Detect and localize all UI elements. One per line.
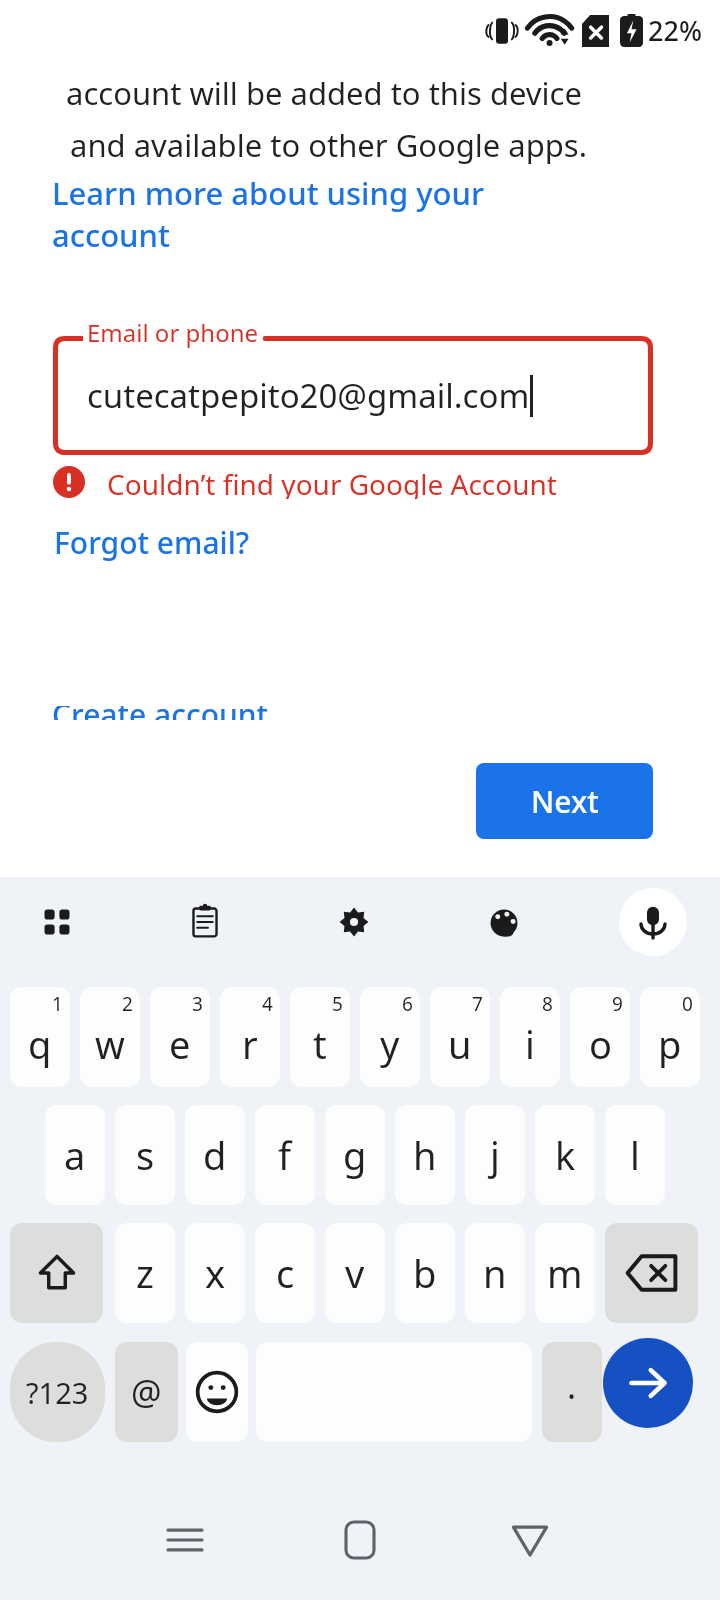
button[interactable]: Backspace	[605, 1223, 698, 1323]
button[interactable]: j	[465, 1105, 525, 1205]
staticText: v	[345, 1247, 365, 1299]
staticText: @	[131, 1369, 162, 1415]
button[interactable]: Create account	[52, 706, 288, 732]
button[interactable]: Enter	[603, 1338, 693, 1428]
staticText: 7	[472, 991, 483, 1017]
staticText: h	[413, 1129, 437, 1181]
button[interactable]: Themes	[470, 888, 538, 956]
staticText: and available to other Google apps.	[70, 124, 588, 166]
button[interactable]: 4	[220, 987, 280, 1087]
staticText: t	[313, 1018, 327, 1070]
button[interactable]: Home	[320, 1500, 400, 1580]
staticText: Email or phone	[87, 316, 259, 349]
staticText: ?123	[26, 1373, 89, 1412]
button[interactable]: Back	[490, 1500, 570, 1580]
button[interactable]: ?123	[10, 1342, 105, 1442]
button[interactable]: v	[325, 1223, 385, 1323]
staticText: Forgot email?	[54, 522, 250, 563]
button[interactable]: Shift	[10, 1223, 103, 1323]
button[interactable]: f	[255, 1105, 315, 1205]
staticText: r	[242, 1018, 258, 1070]
button[interactable]: Forgot email?	[52, 522, 252, 563]
button[interactable]: Voice input	[619, 888, 687, 956]
staticText: 8	[542, 991, 553, 1017]
staticText: 9	[612, 991, 623, 1017]
button[interactable]: Emoji	[186, 1342, 248, 1442]
button[interactable]: s	[115, 1105, 175, 1205]
button[interactable]: z	[115, 1223, 175, 1323]
staticText: z	[136, 1247, 154, 1299]
staticText: 2	[122, 991, 133, 1017]
staticText: l	[630, 1129, 640, 1181]
staticText: f	[278, 1129, 292, 1181]
staticText: g	[343, 1129, 367, 1181]
button[interactable]: b	[395, 1223, 455, 1323]
staticText: i	[525, 1018, 535, 1070]
button[interactable]: m	[535, 1223, 595, 1323]
staticText: u	[448, 1018, 472, 1070]
button[interactable]: n	[465, 1223, 525, 1323]
staticText: cutecatpepito20@gmail.com	[87, 373, 530, 418]
button[interactable]: 2	[80, 987, 140, 1087]
button[interactable]: 0	[640, 987, 700, 1087]
button[interactable]: 8	[500, 987, 560, 1087]
staticText: Learn more about using your account	[52, 172, 485, 256]
button[interactable]: h	[395, 1105, 455, 1205]
button[interactable]: .	[542, 1342, 602, 1442]
button[interactable]: Settings	[320, 888, 388, 956]
button[interactable]: k	[535, 1105, 595, 1205]
staticText: e	[169, 1018, 191, 1070]
staticText: 4	[262, 991, 273, 1017]
button[interactable]: a	[45, 1105, 105, 1205]
button[interactable]: Keyboard switcher	[23, 888, 91, 956]
staticText: 0	[682, 991, 693, 1017]
button[interactable]: @	[115, 1342, 178, 1442]
button[interactable]: 5	[290, 987, 350, 1087]
staticText: a	[64, 1129, 86, 1181]
staticText: 5	[332, 991, 343, 1017]
button[interactable]: Next	[476, 763, 653, 839]
staticText: m	[547, 1247, 583, 1299]
button[interactable]: d	[185, 1105, 245, 1205]
staticText: 1	[52, 991, 63, 1017]
staticText: j	[490, 1129, 500, 1181]
button[interactable]: Recents	[145, 1500, 225, 1580]
staticText: 22%	[648, 12, 702, 49]
staticText: w	[95, 1018, 125, 1070]
button[interactable]: 7	[430, 987, 490, 1087]
staticText: .	[567, 1363, 577, 1409]
staticText: account will be added to this device	[66, 72, 582, 114]
button[interactable]: 6	[360, 987, 420, 1087]
button[interactable]: c	[255, 1223, 315, 1323]
button[interactable]: Clipboard	[171, 888, 239, 956]
staticText: y	[380, 1018, 400, 1070]
button[interactable]: 1	[10, 987, 70, 1087]
staticText: n	[483, 1247, 507, 1299]
button[interactable]: 9	[570, 987, 630, 1087]
button[interactable]: cutecatpepito20@gmail.com	[53, 336, 653, 455]
staticText: 3	[192, 991, 203, 1017]
staticText: p	[658, 1018, 682, 1070]
staticText: k	[555, 1129, 576, 1181]
button[interactable]: g	[325, 1105, 385, 1205]
staticText: s	[136, 1129, 155, 1181]
staticText: x	[205, 1247, 226, 1299]
staticText: o	[589, 1018, 612, 1070]
staticText: Create account	[52, 706, 269, 720]
button[interactable]: l	[605, 1105, 665, 1205]
staticText: c	[276, 1247, 295, 1299]
staticText: q	[28, 1018, 52, 1070]
staticText: 6	[402, 991, 413, 1017]
button[interactable]: 3	[150, 987, 210, 1087]
staticText: d	[203, 1129, 227, 1181]
staticText: Next	[531, 781, 599, 822]
button[interactable]: Learn more about using your account	[52, 172, 542, 256]
staticText: Couldn’t find your Google Account	[107, 465, 557, 499]
staticText: b	[413, 1247, 437, 1299]
button[interactable]: x	[185, 1223, 245, 1323]
